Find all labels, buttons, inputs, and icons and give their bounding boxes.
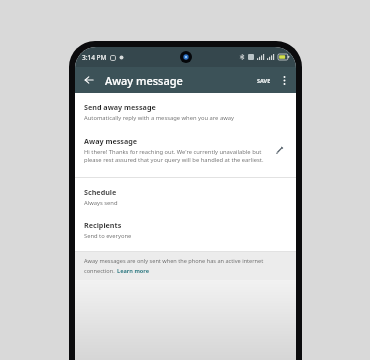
staticText: Schedule [84, 187, 117, 197]
button[interactable]: Schedule [75, 185, 296, 209]
staticText: Recipients [84, 220, 122, 230]
button[interactable]: Send away message [75, 99, 296, 125]
staticText: Away message [105, 73, 183, 88]
button[interactable]: Edit away message [271, 142, 287, 158]
staticText: Automatically reply with a message when … [84, 114, 234, 122]
staticText: Hi there! Thanks for reaching out. We're… [84, 148, 265, 164]
button[interactable]: Recipients [75, 218, 296, 242]
button[interactable]: SAVE [253, 74, 275, 87]
staticText: 3:14 PM [82, 53, 107, 62]
staticText: Away messages are only sent when the pho… [84, 257, 264, 265]
staticText: connection. [84, 267, 117, 275]
staticText: Send away message [84, 102, 156, 112]
staticText: Learn more [117, 267, 150, 275]
staticText: Away message [84, 136, 138, 146]
staticText: SAVE [257, 77, 271, 84]
button[interactable]: More options [275, 71, 293, 89]
button[interactable]: Back [80, 71, 98, 89]
staticText: Always send [84, 199, 118, 207]
staticText: Send to everyone [84, 232, 132, 240]
button[interactable]: Away message [75, 133, 296, 167]
button[interactable]: Learn more [117, 267, 150, 275]
